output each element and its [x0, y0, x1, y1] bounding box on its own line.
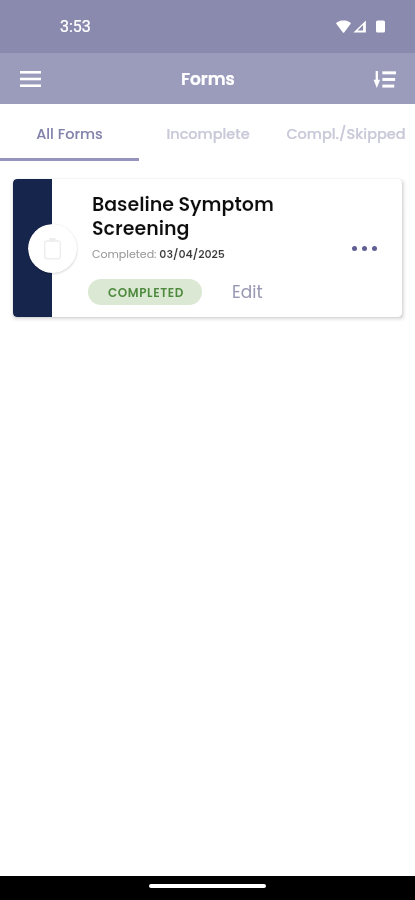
staticText: Incomplete: [166, 124, 250, 144]
button[interactable]: All Forms: [0, 104, 139, 161]
button[interactable]: Open navigation menu: [8, 57, 52, 101]
button[interactable]: Incomplete: [139, 104, 277, 161]
button[interactable]: COMPLETED: [88, 279, 202, 305]
button[interactable]: Sort: [363, 57, 407, 101]
staticText: COMPLETED: [108, 284, 184, 301]
button[interactable]: Edit: [228, 276, 267, 308]
staticText: Completed: 03/04/2025: [92, 246, 225, 261]
staticText: Edit: [232, 280, 263, 304]
button[interactable]: Compl./Skipped: [277, 104, 415, 161]
button[interactable]: More options: [352, 228, 392, 268]
staticText: All Forms: [36, 124, 103, 144]
button[interactable]: Baseline Symptom Screening: [13, 179, 402, 317]
staticText: Forms: [181, 67, 235, 91]
staticText: 3:53: [60, 17, 91, 36]
staticText: Baseline Symptom Screening: [92, 191, 274, 241]
staticText: Compl./Skipped: [286, 124, 406, 144]
